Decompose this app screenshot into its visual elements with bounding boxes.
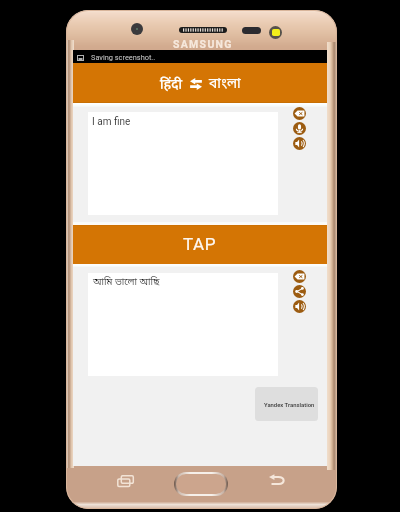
staticText: আমি ভালো আছি [93,276,160,289]
button[interactable]: Back [269,474,285,485]
button[interactable]: Clear text [293,107,306,120]
button[interactable]: Recent apps [117,475,134,487]
staticText: I am fine [92,116,131,128]
staticText: Saving screenshot.. [91,53,156,62]
staticText: TAP [183,234,217,254]
staticText: বাংলা [209,75,241,93]
staticText: SAMSUNG [173,38,233,50]
button[interactable]: Clear text [293,270,306,283]
button[interactable]: Share [293,285,306,298]
button[interactable]: Speak aloud [293,137,306,150]
button[interactable]: Speak aloud [293,300,306,313]
staticText: Yandex Translation [264,402,315,409]
button[interactable]: Voice input [293,122,306,135]
staticText: हिंदी [160,74,183,93]
button[interactable]: हिंदी [73,63,327,103]
button[interactable]: TAP [73,225,327,264]
button[interactable]: Yandex Translation [255,387,318,421]
